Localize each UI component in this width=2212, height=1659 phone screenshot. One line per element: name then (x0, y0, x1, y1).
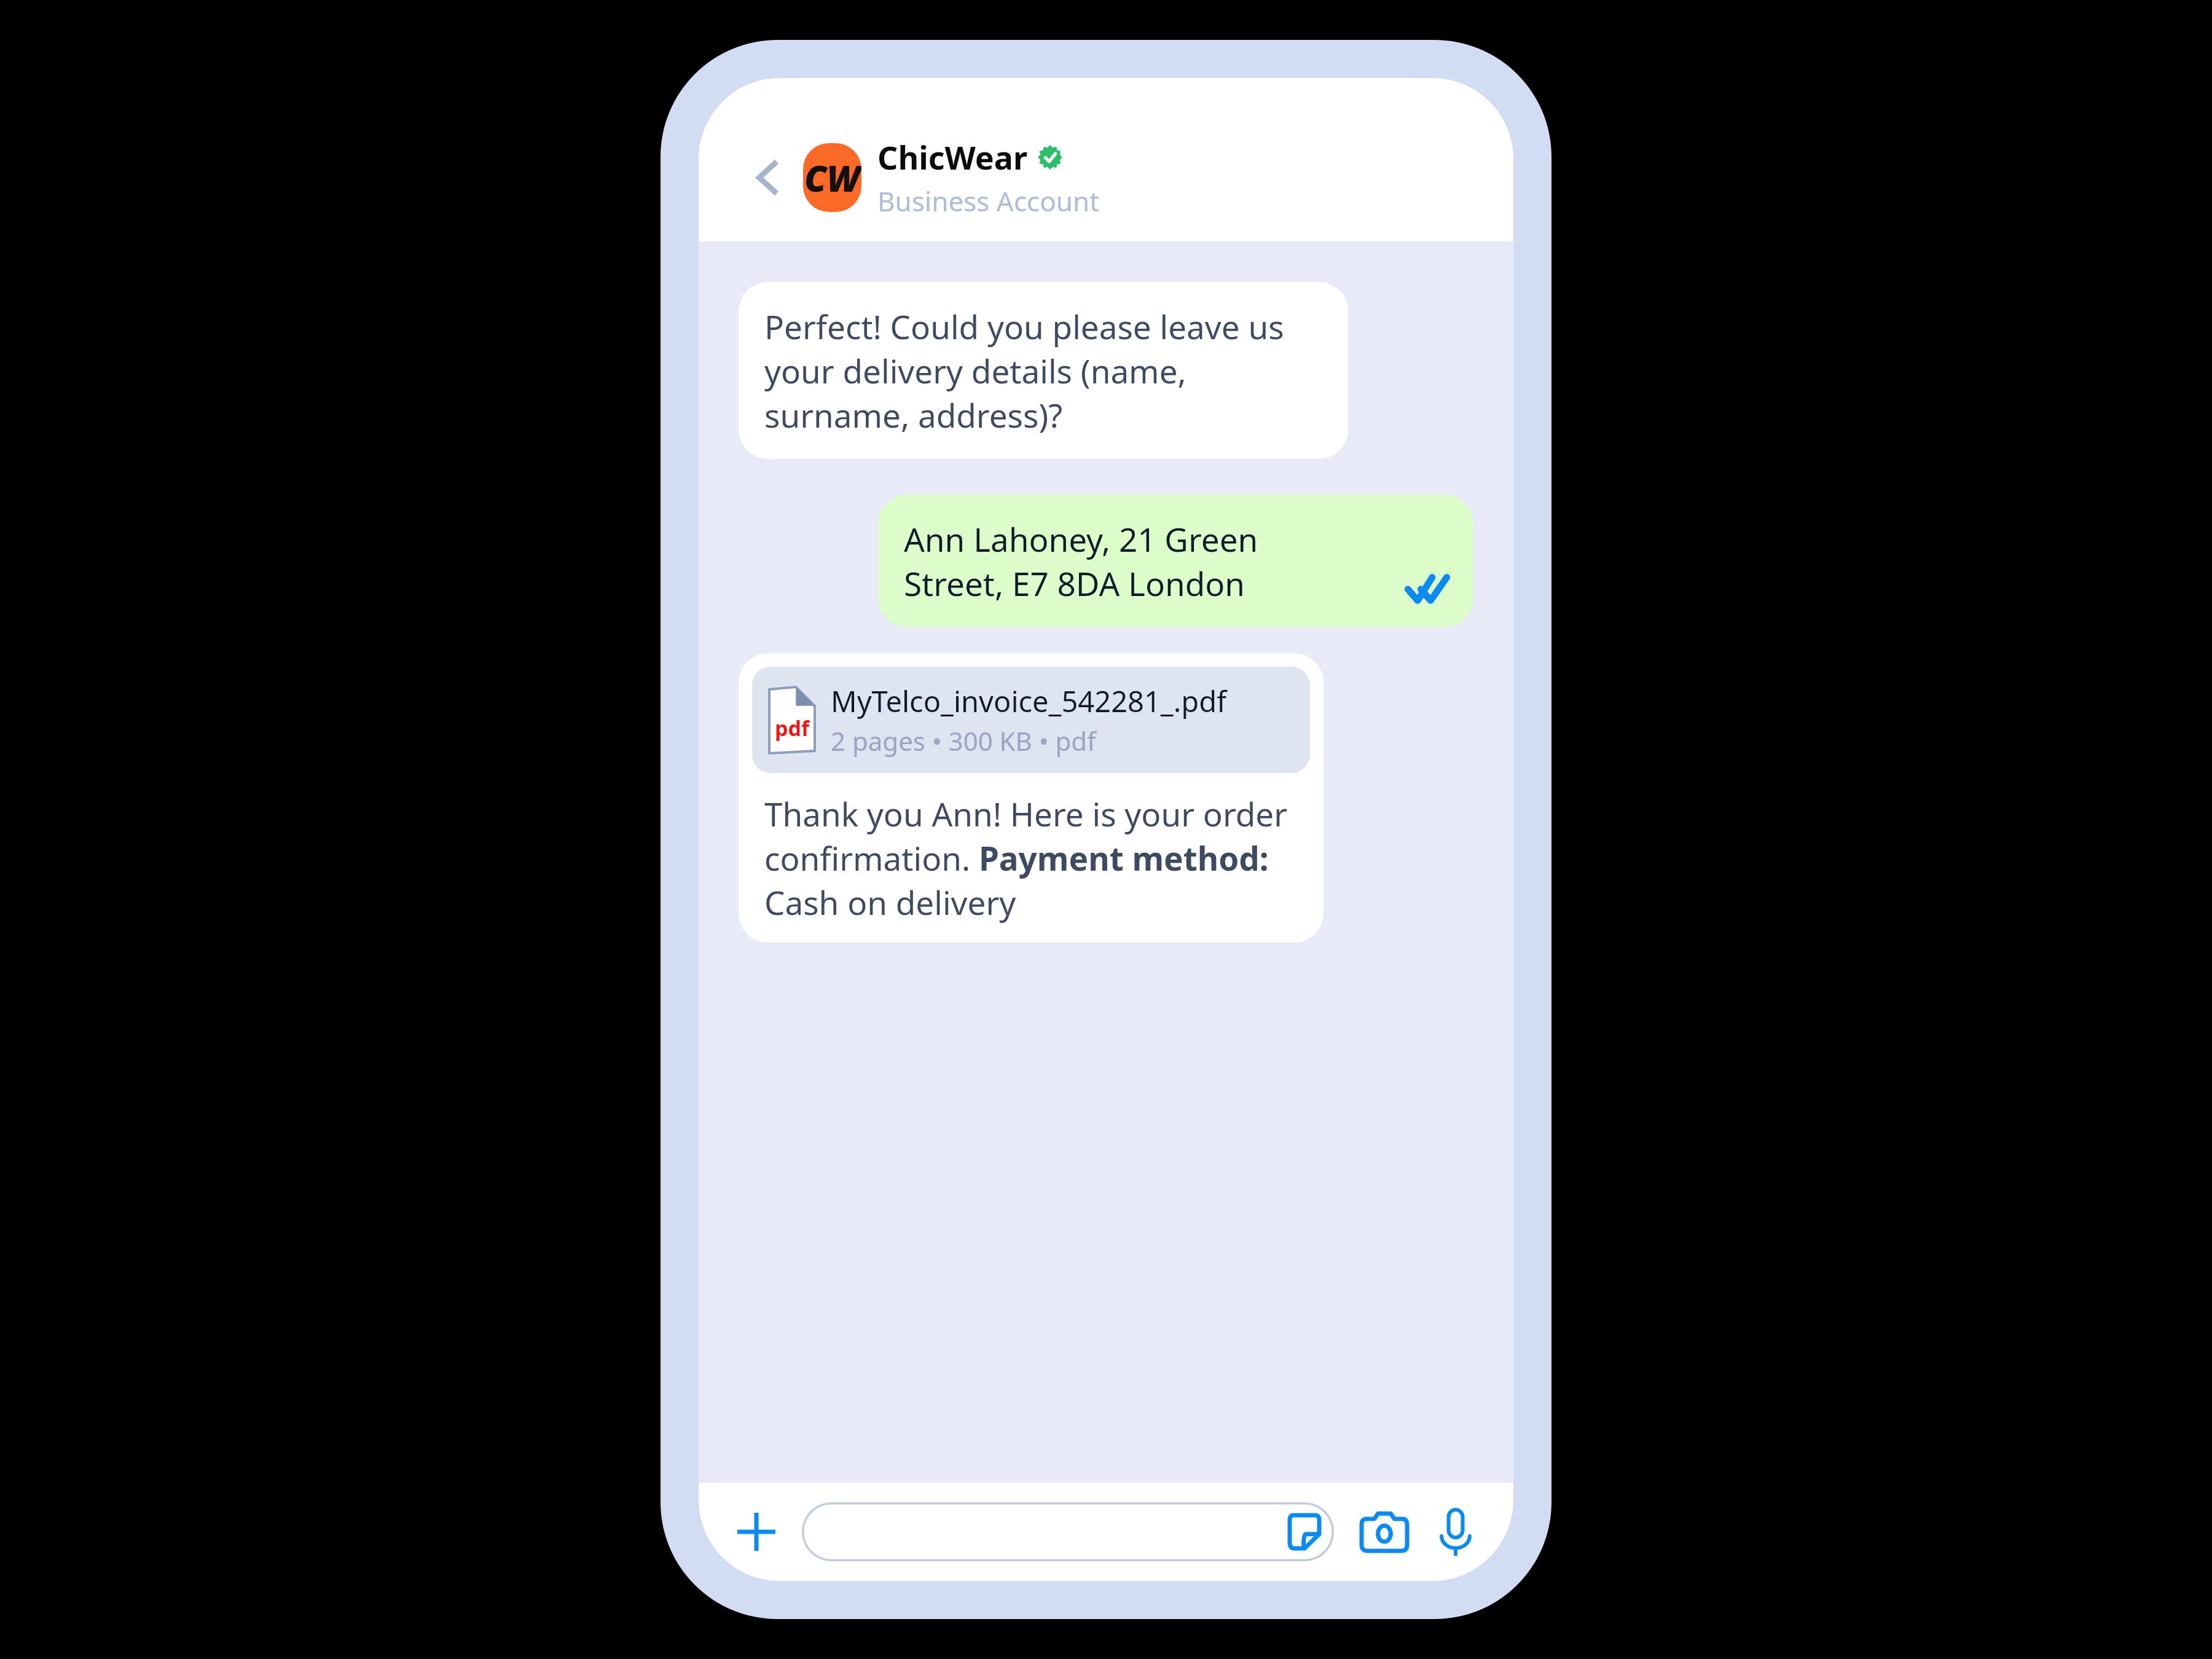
staticText: Thank you Ann! Here is your order confir… (764, 791, 1298, 924)
staticText: Perfect! Could you please leave us your … (764, 304, 1322, 437)
button[interactable]: Attach (727, 1502, 786, 1561)
button[interactable]: Perfect! Could you please leave us your … (739, 282, 1348, 459)
staticText: Business Account (877, 182, 1100, 219)
button[interactable]: Ann Lahoney, 21 Green Street, E7 8DA Lon… (878, 495, 1473, 627)
staticText: MyTelco_invoice_542281_.pdf (831, 681, 1227, 721)
button[interactable]: Back (740, 150, 796, 205)
button[interactable]: Voice message (1426, 1502, 1485, 1561)
button[interactable]: Open PDF attachment (752, 667, 1310, 773)
button[interactable]: Open PDF attachment (739, 653, 1324, 943)
button[interactable]: ChicWear (877, 135, 1100, 219)
staticText: CW (804, 154, 860, 202)
staticText: 2 pages • 300 KB • pdf (831, 723, 1096, 758)
button[interactable]: ChicWear profile (803, 143, 861, 212)
staticText: Ann Lahoney, 21 Green Street, E7 8DA Lon… (904, 517, 1322, 605)
staticText: ChicWear (877, 135, 1028, 179)
button[interactable]: Camera (1355, 1502, 1414, 1561)
staticText: pdf (775, 714, 810, 742)
button[interactable] (802, 1502, 1334, 1561)
